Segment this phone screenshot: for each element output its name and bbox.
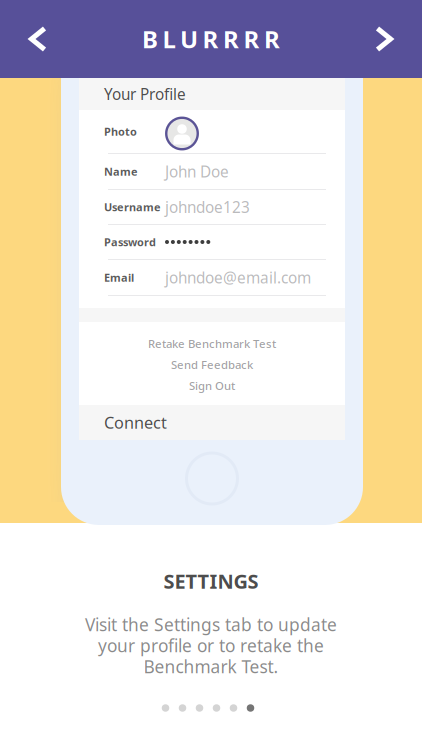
button[interactable]: Retake Benchmark Test — [79, 333, 345, 354]
staticText: johndoe123 — [165, 197, 250, 217]
button[interactable]: Next — [346, 0, 422, 78]
staticText: Email — [104, 270, 134, 285]
staticText: Send Feedback — [171, 357, 253, 372]
staticText: Retake Benchmark Test — [148, 336, 276, 351]
staticText: Sign Out — [189, 378, 235, 393]
staticText: johndoe@email.com — [165, 267, 311, 288]
staticText: Username — [104, 200, 161, 214]
staticText: John Doe — [165, 161, 229, 182]
button[interactable]: Sign Out — [79, 375, 345, 396]
staticText: Password — [104, 235, 156, 249]
staticText: Photo — [104, 124, 137, 139]
button[interactable]: Send Feedback — [79, 354, 345, 375]
staticText: your profile or to retake the — [98, 634, 324, 657]
staticText: Benchmark Test. — [143, 655, 278, 678]
button[interactable]: Back — [0, 0, 76, 78]
staticText: Connect — [104, 411, 167, 434]
staticText: Visit the Settings tab to update — [85, 613, 337, 636]
staticText: BLURRRR — [142, 23, 280, 55]
staticText: Name — [104, 164, 138, 179]
staticText: SETTINGS — [163, 568, 258, 594]
staticText: Your Profile — [104, 84, 186, 104]
